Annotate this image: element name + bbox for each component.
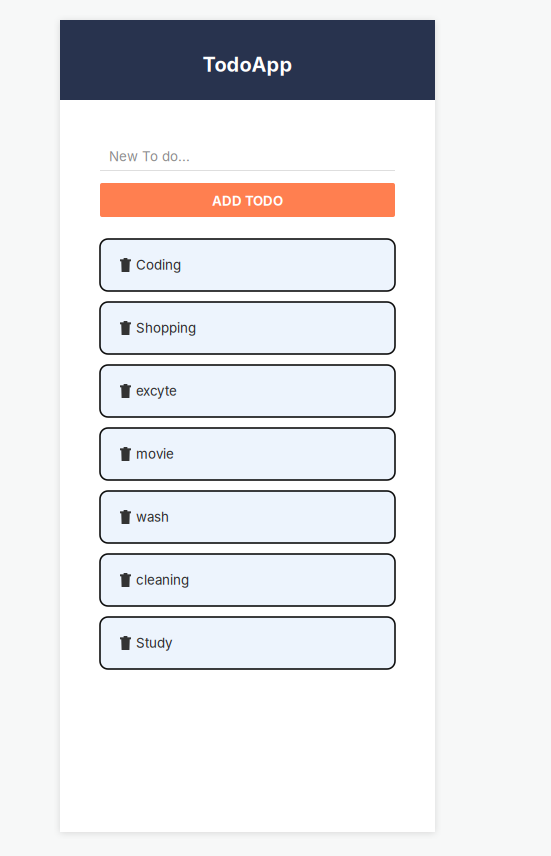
button[interactable]: excyte — [100, 365, 395, 417]
staticText: New To do... — [109, 148, 190, 164]
staticText: ADD TODO — [212, 193, 283, 209]
staticText: wash — [136, 509, 169, 525]
button[interactable]: Study — [100, 617, 395, 669]
button[interactable]: Shopping — [100, 302, 395, 354]
staticText: Coding — [136, 257, 181, 273]
button[interactable]: wash — [100, 491, 395, 543]
button[interactable]: New To do... — [100, 126, 395, 171]
staticText: TodoApp — [202, 52, 292, 77]
button[interactable]: ADD TODO — [100, 183, 395, 217]
button[interactable]: cleaning — [100, 554, 395, 606]
staticText: movie — [136, 446, 174, 462]
button[interactable]: movie — [100, 428, 395, 480]
staticText: cleaning — [136, 572, 189, 588]
staticText: excyte — [136, 383, 177, 399]
staticText: Shopping — [136, 320, 196, 336]
staticText: Study — [136, 635, 172, 651]
button[interactable]: Coding — [100, 239, 395, 291]
